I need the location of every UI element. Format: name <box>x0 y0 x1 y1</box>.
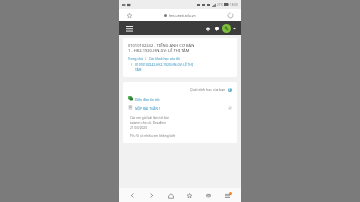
button[interactable]: Home <box>165 190 176 201</box>
button[interactable]: Messages <box>212 24 221 33</box>
staticText: / <box>131 63 133 67</box>
staticText: / <box>145 57 147 61</box>
button[interactable]: Bookmarks <box>184 190 195 201</box>
staticText: lms.uneti.edu.vn <box>169 13 196 18</box>
button[interactable]: Help <box>228 88 232 92</box>
button[interactable]: Back <box>127 190 138 201</box>
staticText: 27% <box>217 3 223 7</box>
staticText: NỘP BÀI TUẦN 1 <box>135 106 161 110</box>
button[interactable]: NỘP BÀI TUẦN 1 <box>128 105 232 110</box>
button[interactable]: Menu <box>124 23 135 34</box>
button[interactable]: Bookmark <box>125 11 134 20</box>
button[interactable]: More options <box>222 190 233 201</box>
staticText: 1 - HK2-1920-HN-GV: LÊ THỊ TÂM <box>128 48 190 53</box>
staticText: 18:00 <box>230 3 238 7</box>
button[interactable]: Reload <box>226 11 235 20</box>
button[interactable]: Notifications <box>203 24 212 33</box>
button[interactable]: Các khoá học của tôi <box>149 57 180 61</box>
staticText: Các em gửi bài làm tới bài taiamn cho cô… <box>130 116 169 130</box>
button[interactable]: 01010102242-HK2-1920-HN-GV: LÊ THỊ TÂM <box>135 63 193 72</box>
button[interactable]: More <box>233 27 236 30</box>
button[interactable]: Mark complete <box>228 106 232 110</box>
staticText: Quá trình học của bạn <box>190 87 226 92</box>
button[interactable]: 01010102242 - TIẾNG ANH CƠ BẢN <box>128 43 232 72</box>
staticText: 01010102242 - TIẾNG ANH CƠ BẢN <box>128 43 195 48</box>
staticText: ? <box>229 88 231 92</box>
button[interactable]: Profile <box>222 24 231 33</box>
button[interactable]: Diễn đàn tin tức <box>128 96 232 101</box>
button[interactable]: Trang chủ <box>128 57 143 61</box>
staticText: P/s: Vì có nhiều em không biết <box>130 134 176 138</box>
button[interactable]: Forward <box>146 190 157 201</box>
button[interactable]: Tabs <box>203 190 214 201</box>
staticText: Diễn đàn tin tức <box>135 97 160 101</box>
